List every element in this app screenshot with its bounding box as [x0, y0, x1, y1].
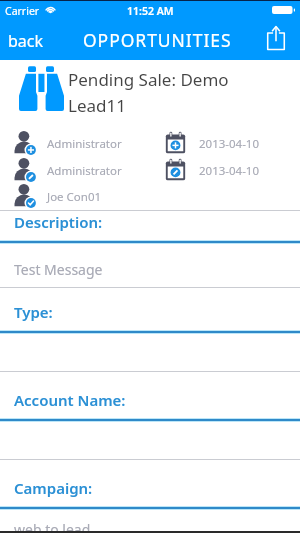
button[interactable]: Type:: [0, 299, 300, 331]
button[interactable]: Share: [259, 20, 293, 56]
staticText: Carrier: [5, 4, 40, 18]
staticText: Account Name:: [14, 390, 126, 410]
staticText: 11:52 AM: [127, 4, 174, 18]
button[interactable]: Pending Sale: Demo Lead11: [0, 60, 300, 126]
staticText: Description:: [14, 212, 103, 232]
staticText: back: [8, 30, 44, 52]
button[interactable]: Administrator: [0, 130, 300, 156]
staticText: web to lead: [14, 520, 91, 533]
button[interactable]: Joe Con01: [0, 183, 300, 209]
staticText: Administrator: [47, 163, 122, 179]
staticText: 2013-04-10: [199, 136, 260, 152]
staticText: Pending Sale: Demo Lead11: [68, 68, 236, 117]
staticText: Joe Con01: [47, 189, 102, 205]
staticText: Administrator: [47, 136, 122, 152]
button[interactable]: Description:: [0, 209, 300, 241]
button[interactable]: back: [0, 20, 56, 60]
staticText: OPPORTUNITIES: [83, 28, 232, 52]
button[interactable]: Campaign:: [0, 475, 300, 507]
staticText: Type:: [14, 302, 53, 322]
staticText: Test Message: [14, 260, 103, 279]
staticText: Campaign:: [14, 478, 93, 498]
button[interactable]: Account Name:: [0, 387, 300, 419]
button[interactable]: Administrator: [0, 157, 300, 183]
staticText: 2013-04-10: [199, 163, 260, 179]
